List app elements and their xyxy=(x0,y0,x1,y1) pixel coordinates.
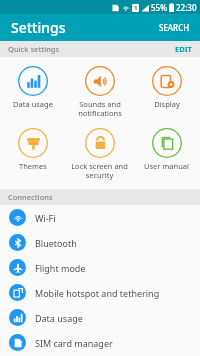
staticText: 22:30 xyxy=(176,2,197,13)
button[interactable]: Lock screen and security xyxy=(66,126,133,182)
staticText: Connections xyxy=(8,192,53,202)
staticText: Bluetooth xyxy=(35,237,77,249)
staticText: SEARCH xyxy=(159,22,190,33)
staticText: Mobile hotspot and tethering xyxy=(35,287,160,299)
button[interactable]: Sounds and notifications xyxy=(66,64,133,120)
staticText: EDIT xyxy=(175,44,192,54)
staticText: Wi-Fi xyxy=(35,212,56,224)
staticText: Data usage xyxy=(13,99,53,109)
button[interactable]: Display xyxy=(133,64,200,111)
staticText: Sounds and notifications xyxy=(78,99,122,118)
button[interactable]: Flight mode xyxy=(0,255,200,280)
button[interactable]: Data usage xyxy=(0,305,200,330)
staticText: User manual xyxy=(144,161,189,171)
staticText: SIM card manager xyxy=(35,337,113,349)
staticText: 55% xyxy=(151,2,167,13)
staticText: Themes xyxy=(19,161,47,171)
button[interactable]: Wi-Fi xyxy=(0,205,200,230)
button[interactable]: Data usage xyxy=(0,64,66,111)
button[interactable]: Mobile hotspot and tethering xyxy=(0,280,200,305)
button[interactable]: Themes xyxy=(0,126,66,173)
staticText: Lock screen and security xyxy=(71,161,128,180)
button[interactable]: SEARCH xyxy=(149,17,200,38)
button[interactable]: User manual xyxy=(133,126,200,173)
staticText: 1 xyxy=(134,4,138,12)
staticText: Data usage xyxy=(35,312,83,324)
staticText: Quick settings xyxy=(8,44,60,54)
button[interactable]: EDIT xyxy=(167,41,200,57)
button[interactable]: SIM card manager xyxy=(0,330,200,355)
staticText: Flight mode xyxy=(35,262,86,274)
button[interactable]: Bluetooth xyxy=(0,230,200,255)
staticText: Display xyxy=(154,99,180,109)
staticText: Settings xyxy=(11,18,66,37)
